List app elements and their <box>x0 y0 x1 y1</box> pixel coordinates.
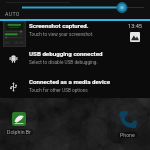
staticText: Touch for other USB options <box>29 88 88 94</box>
button[interactable]: USB debugging <box>0 44 150 72</box>
staticText: Dolphin Br <box>7 129 31 135</box>
other: Screenshot <box>130 32 140 42</box>
staticText: Touch to view your screenshot. <box>29 32 94 38</box>
button[interactable]: Screenshot captured. <box>0 21 150 48</box>
button[interactable]: Dolphin Br <box>5 112 33 135</box>
staticText: Select to disable USB debugging. <box>29 60 98 66</box>
staticText: 13:45 <box>128 23 142 30</box>
staticText: Connected as a media device <box>29 78 111 85</box>
staticText: USB debugging connected <box>29 50 103 57</box>
other: USB options <box>0 82 27 91</box>
staticText: Screenshot captured. <box>29 22 89 29</box>
button[interactable]: Phone <box>118 111 137 138</box>
staticText: Phone <box>120 132 135 138</box>
button[interactable]: USB options <box>0 72 150 100</box>
other: USB debugging <box>0 54 27 63</box>
staticText: AUTO <box>5 11 20 17</box>
